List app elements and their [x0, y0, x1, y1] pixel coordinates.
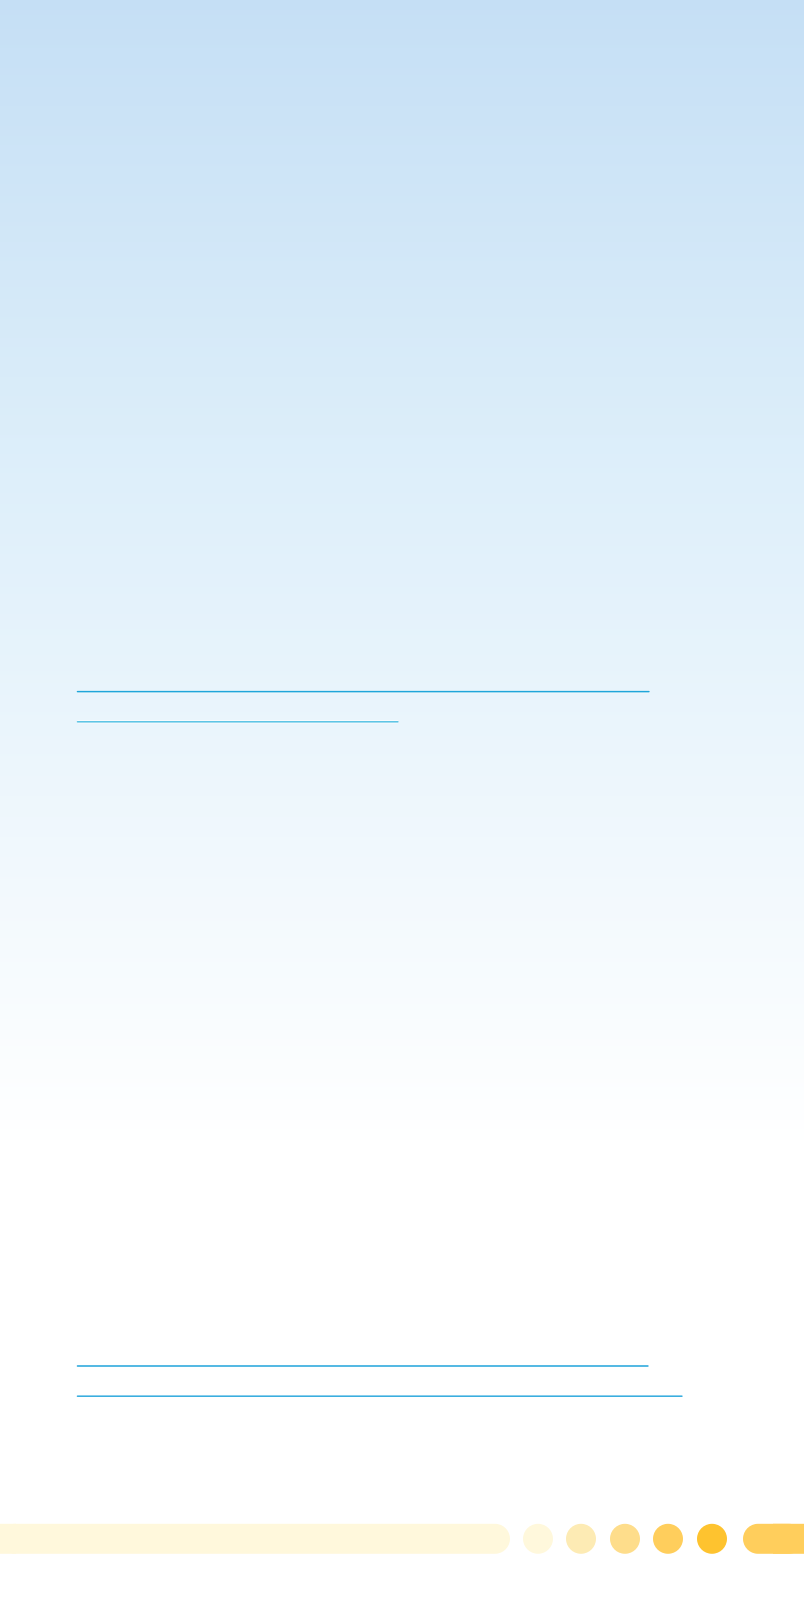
- button[interactable]: Tint level, selected: [0, 1524, 804, 1554]
- button[interactable]: Tint level 1: [0, 1524, 553, 1554]
- button[interactable]: Tint level 5: [0, 1524, 727, 1554]
- button[interactable]: Tint level 2: [0, 1524, 596, 1554]
- button[interactable]: Tint level 4: [0, 1524, 683, 1554]
- button[interactable]: Primary link: [0, 690, 804, 693]
- button[interactable]: Secondary link: [0, 720, 804, 723]
- button[interactable]: Tint level 3: [0, 1524, 640, 1554]
- button[interactable]: Third link: [0, 1364, 804, 1368]
- button[interactable]: Fourth link: [0, 1395, 804, 1398]
